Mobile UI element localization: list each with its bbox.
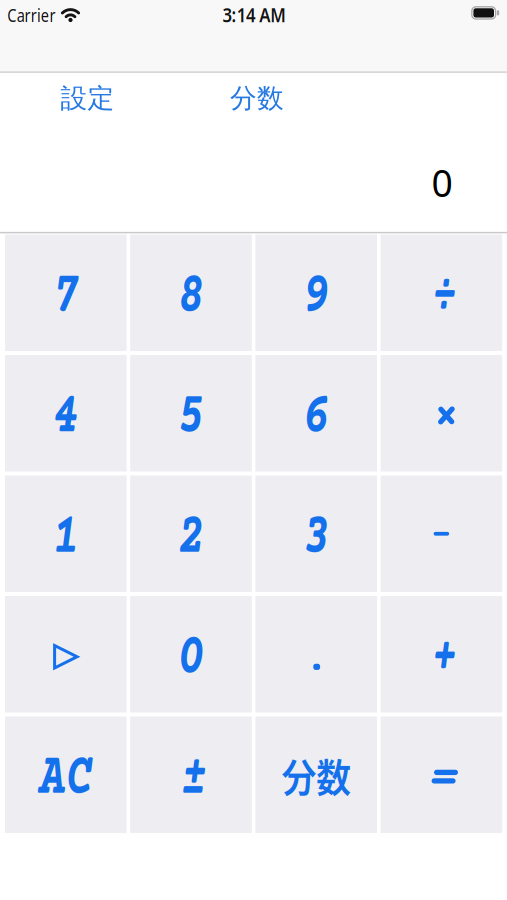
button[interactable]: 0	[130, 596, 252, 712]
staticText: +	[426, 624, 463, 693]
button[interactable]: Decimal point	[255, 596, 377, 712]
button[interactable]: 8	[130, 234, 252, 351]
staticText: 2	[172, 504, 209, 573]
staticText: Carrier	[0, 2, 62, 27]
button[interactable]: All clear	[5, 716, 127, 833]
staticText: 7	[47, 263, 84, 332]
button[interactable]: Plus minus	[130, 716, 252, 833]
staticText: 分数	[276, 746, 356, 804]
staticText: 0	[431, 158, 452, 207]
staticText: 設定	[60, 82, 114, 115]
button[interactable]: 9	[255, 234, 377, 351]
button[interactable]: 設定	[47, 81, 127, 115]
button[interactable]: Subtract	[381, 475, 502, 592]
button[interactable]: 分数	[217, 81, 297, 115]
button[interactable]: 6	[255, 355, 377, 471]
button[interactable]: 5	[130, 355, 252, 471]
staticText: AC	[29, 745, 103, 814]
button[interactable]: Equals	[381, 716, 502, 833]
staticText: 5	[172, 383, 209, 452]
button[interactable]: 1	[5, 475, 127, 592]
button[interactable]: 2	[130, 475, 252, 592]
staticText: 0	[172, 624, 209, 693]
staticText: ÷	[426, 263, 463, 332]
button[interactable]: Add	[381, 596, 502, 712]
button[interactable]: 7	[5, 234, 127, 351]
staticText: 4	[47, 383, 84, 452]
staticText: 6	[298, 383, 335, 452]
staticText: 8	[172, 263, 209, 332]
staticText: 9	[298, 263, 335, 332]
button[interactable]: Play	[5, 596, 127, 712]
staticText: 1	[47, 504, 84, 573]
staticText: 分数	[230, 82, 284, 115]
button[interactable]: 4	[5, 355, 127, 471]
staticText: ±	[175, 745, 212, 814]
button[interactable]: Multiply	[381, 355, 502, 471]
button[interactable]: 3	[255, 475, 377, 592]
staticText: 3	[298, 504, 335, 573]
staticText: 3:14 AM	[216, 1, 292, 28]
button[interactable]: Divide	[381, 234, 502, 351]
button[interactable]: 分数	[255, 716, 377, 833]
